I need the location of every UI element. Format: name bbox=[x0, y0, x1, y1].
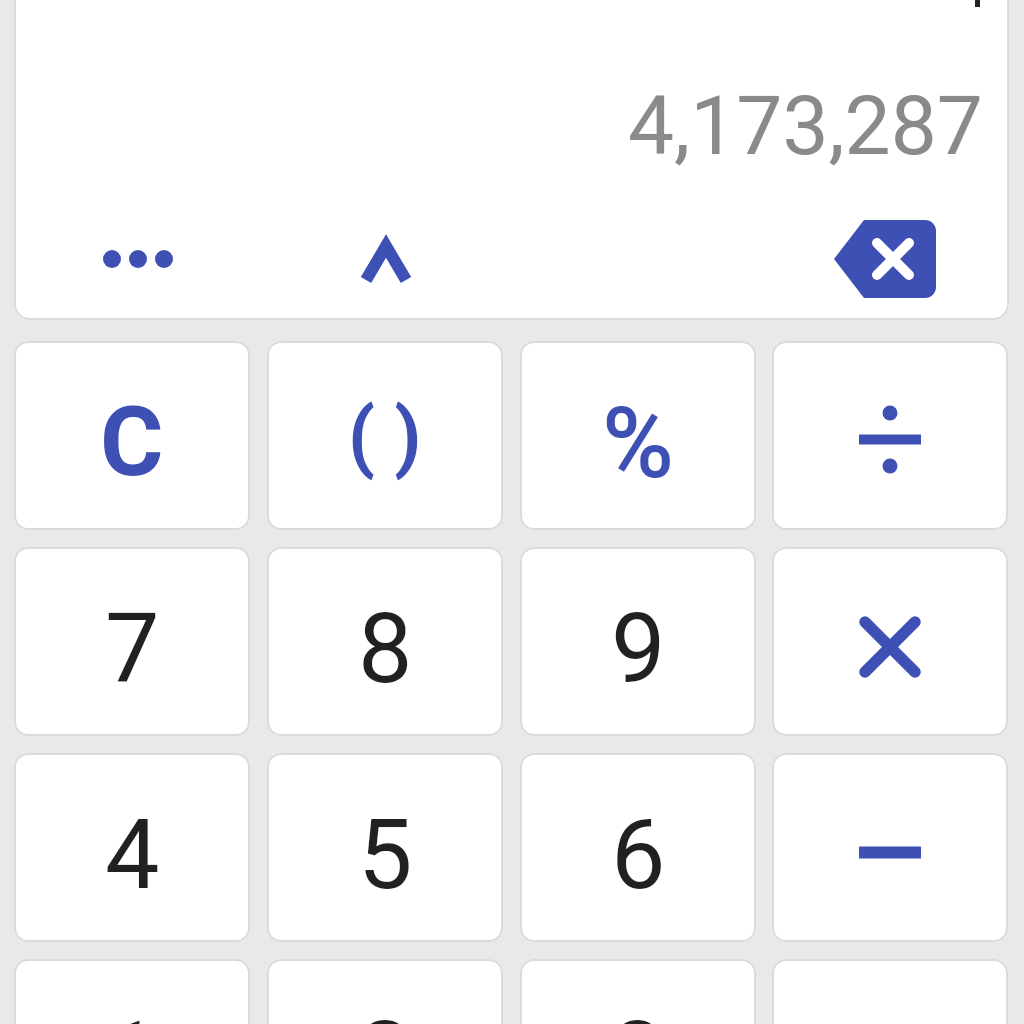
staticText: ( ) bbox=[348, 392, 422, 482]
button[interactable]: 4 bbox=[14, 753, 250, 942]
staticText: 9 bbox=[611, 592, 666, 706]
staticText: C bbox=[100, 385, 164, 499]
staticText: 4,173,287 bbox=[628, 78, 983, 174]
staticText: % bbox=[602, 386, 674, 501]
staticText: 2 bbox=[358, 1000, 413, 1024]
button[interactable]: % bbox=[520, 341, 756, 530]
button[interactable]: 1 bbox=[14, 959, 250, 1024]
button[interactable]: C bbox=[14, 341, 250, 530]
button[interactable] bbox=[346, 218, 426, 298]
button[interactable] bbox=[772, 341, 1008, 530]
button[interactable]: ( ) bbox=[267, 341, 503, 530]
button[interactable]: 6 bbox=[520, 753, 756, 942]
button[interactable] bbox=[98, 219, 178, 299]
button[interactable] bbox=[772, 959, 1008, 1024]
button[interactable] bbox=[772, 547, 1008, 736]
button[interactable]: 2 bbox=[267, 959, 503, 1024]
button[interactable]: 8 bbox=[267, 547, 503, 736]
staticText: 3 bbox=[611, 1000, 666, 1024]
staticText: 5 bbox=[358, 798, 413, 912]
button[interactable]: 5 bbox=[267, 753, 503, 942]
staticText: 1 bbox=[105, 1000, 160, 1024]
staticText: 6 bbox=[611, 798, 666, 912]
staticText: 4 bbox=[105, 798, 160, 912]
button[interactable]: 3 bbox=[520, 959, 756, 1024]
button[interactable] bbox=[834, 220, 936, 298]
staticText: 7 bbox=[105, 592, 160, 706]
staticText: 8 bbox=[358, 592, 413, 706]
button[interactable]: 7 bbox=[14, 547, 250, 736]
button[interactable] bbox=[772, 753, 1008, 942]
button[interactable]: 9 bbox=[520, 547, 756, 736]
